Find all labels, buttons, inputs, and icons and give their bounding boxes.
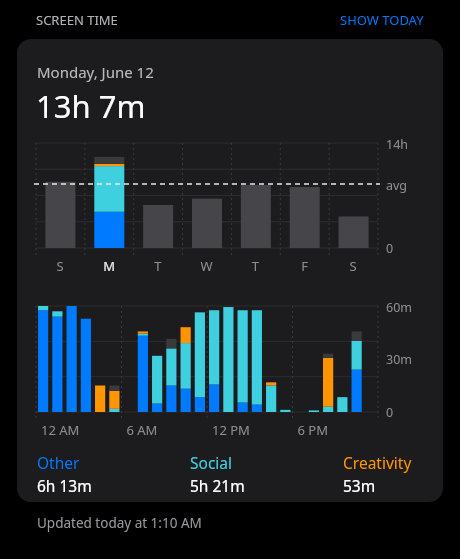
button[interactable]: Screen Time report — [0, 0, 460, 559]
